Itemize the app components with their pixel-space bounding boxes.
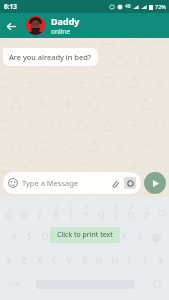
staticText: 1: [7, 204, 10, 210]
staticText: ?123: [9, 281, 20, 288]
staticText: Are you already in bed?: [9, 52, 92, 62]
staticText: J: [108, 231, 111, 243]
button[interactable]: Attach: [109, 177, 121, 189]
staticText: V: [67, 255, 73, 267]
staticText: 6:13: [4, 2, 17, 11]
staticText: E: [38, 210, 43, 222]
staticText: Y: [84, 210, 89, 222]
staticText: S: [27, 231, 32, 243]
button[interactable]: 2: [16, 201, 32, 225]
staticText: 48: [125, 3, 131, 10]
button[interactable]: G: [69, 225, 85, 249]
staticText: 6: [85, 204, 88, 210]
button[interactable]: H: [85, 225, 101, 249]
button[interactable]: F: [53, 225, 69, 249]
button[interactable]: J: [101, 225, 117, 249]
staticText: 4: [55, 204, 58, 210]
staticText: L: [139, 231, 144, 243]
staticText: G: [74, 231, 81, 243]
staticText: N: [96, 255, 103, 267]
staticText: Z: [22, 255, 27, 267]
staticText: ?: [143, 255, 147, 267]
button[interactable]: Are you already in bed?: [3, 48, 98, 66]
staticText: 0: [145, 204, 148, 210]
button[interactable]: Send: [144, 172, 166, 194]
staticText: P: [144, 210, 150, 222]
staticText: Q: [5, 210, 12, 222]
button[interactable]: Back: [0, 15, 22, 37]
staticText: K: [122, 231, 128, 243]
staticText: 3: [39, 204, 42, 210]
staticText: C: [52, 255, 58, 267]
staticText: 5: [70, 204, 73, 210]
button[interactable]: Type a Message: [3, 172, 141, 194]
button[interactable]: M: [107, 249, 122, 273]
button[interactable]: K: [117, 225, 133, 249]
staticText: B: [82, 255, 88, 267]
staticText: 72%: [155, 3, 166, 10]
staticText: O: [128, 210, 135, 222]
button[interactable]: Click to print text: [50, 227, 120, 243]
staticText: 7: [100, 204, 103, 210]
button[interactable]: Camera: [124, 177, 136, 189]
staticText: M: [111, 255, 119, 267]
staticText: Daddy: [51, 15, 80, 27]
staticText: X: [37, 255, 42, 267]
staticText: online: [51, 27, 70, 36]
staticText: I: [115, 210, 118, 222]
staticText: T: [69, 210, 74, 222]
staticText: 8: [115, 204, 118, 210]
staticText: F: [59, 231, 64, 243]
staticText: H: [90, 231, 97, 243]
staticText: D: [42, 231, 49, 243]
button[interactable]: D: [37, 225, 53, 249]
staticText: R: [53, 210, 59, 222]
staticText: A: [11, 231, 17, 243]
staticText: !: [128, 255, 131, 267]
staticText: Type a Message: [22, 178, 109, 188]
staticText: U: [98, 210, 105, 222]
staticText: 2: [23, 204, 26, 210]
staticText: W: [20, 210, 28, 222]
staticText: Click to print text: [57, 230, 113, 240]
staticText: 9: [130, 204, 133, 210]
button[interactable]: Daddy: [51, 15, 169, 36]
button[interactable]: Enter: [149, 225, 163, 249]
